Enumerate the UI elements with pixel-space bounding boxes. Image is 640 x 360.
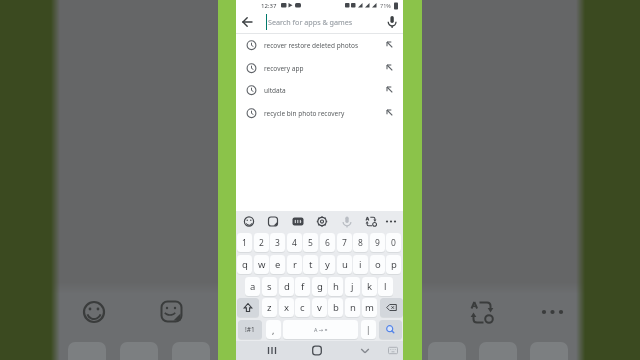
button[interactable]: 9 (370, 233, 385, 252)
button[interactable]: g (312, 277, 327, 296)
button[interactable] (379, 320, 402, 339)
button[interactable] (380, 298, 403, 317)
button[interactable]: 6 (320, 233, 335, 252)
button[interactable] (307, 341, 327, 360)
button[interactable] (340, 211, 354, 232)
button[interactable]: recovery app (236, 57, 403, 80)
button[interactable]: c (295, 298, 310, 317)
staticText: recover restore deleted photos (264, 41, 359, 50)
staticText: A → ¤ (314, 326, 328, 333)
button[interactable]: 7 (337, 233, 352, 252)
button[interactable] (364, 211, 378, 232)
button[interactable]: h (328, 277, 343, 296)
staticText: 3 (275, 237, 280, 249)
button[interactable]: q (237, 255, 252, 274)
button[interactable]: v (312, 298, 327, 317)
staticText: 1 (242, 237, 247, 249)
staticText: , (272, 324, 275, 336)
button[interactable] (266, 211, 280, 232)
button[interactable]: 8 (353, 233, 368, 252)
staticText: m (365, 301, 374, 314)
staticText: 4 (292, 237, 297, 249)
staticText: e (275, 258, 281, 271)
staticText: ultdata (264, 86, 286, 95)
button[interactable]: p (386, 255, 401, 274)
staticText: | (366, 324, 371, 335)
staticText: Search for apps & games (268, 17, 353, 27)
staticText: 2 (259, 237, 264, 249)
button[interactable]: | (361, 320, 376, 339)
staticText: i (359, 258, 362, 271)
button[interactable] (242, 211, 256, 232)
button[interactable]: u (337, 255, 352, 274)
button[interactable]: j (345, 277, 360, 296)
button[interactable] (381, 11, 403, 33)
staticText: v (317, 301, 322, 314)
button[interactable]: z (262, 298, 277, 317)
staticText: 6 (325, 237, 330, 249)
button[interactable]: 4 (287, 233, 302, 252)
button[interactable]: i (353, 255, 368, 274)
staticText: r (293, 258, 297, 271)
button[interactable]: n (345, 298, 360, 317)
button[interactable] (237, 298, 259, 317)
staticText: g (317, 280, 323, 293)
button[interactable]: 5 (303, 233, 318, 252)
button[interactable]: 2 (254, 233, 269, 252)
staticText: 7 (342, 237, 347, 249)
button[interactable]: , (266, 320, 281, 339)
button[interactable] (236, 11, 260, 33)
button[interactable]: f (295, 277, 310, 296)
button[interactable]: k (362, 277, 377, 296)
button[interactable]: !#1 (238, 320, 262, 339)
button[interactable]: a (245, 277, 260, 296)
staticText: 9 (375, 237, 380, 249)
button[interactable]: 3 (270, 233, 285, 252)
button[interactable] (262, 341, 282, 360)
staticText: 12:37 (261, 2, 277, 10)
staticText: !#1 (245, 325, 255, 334)
staticText: f (301, 280, 305, 293)
button[interactable]: b (328, 298, 343, 317)
staticText: t (309, 258, 313, 271)
staticText: x (284, 301, 290, 314)
button[interactable]: y (320, 255, 335, 274)
button[interactable]: m (362, 298, 377, 317)
button[interactable] (384, 211, 398, 232)
staticText: recovery app (264, 64, 304, 73)
button[interactable]: s (262, 277, 277, 296)
button[interactable] (291, 211, 305, 232)
staticText: d (284, 280, 290, 293)
button[interactable]: recover restore deleted photos (236, 34, 403, 57)
button[interactable]: recycle bin photo recovery (236, 102, 403, 125)
staticText: k (367, 280, 373, 293)
button[interactable]: x (279, 298, 294, 317)
button[interactable]: 0 (386, 233, 401, 252)
staticText: q (242, 258, 248, 271)
staticText: a (250, 280, 256, 293)
button[interactable]: ultdata (236, 79, 403, 102)
staticText: z (267, 301, 272, 314)
staticText: y (325, 258, 330, 271)
button[interactable]: l (378, 277, 393, 296)
button[interactable]: w (254, 255, 269, 274)
button[interactable] (355, 341, 375, 360)
button[interactable]: e (270, 255, 285, 274)
button[interactable]: r (287, 255, 302, 274)
staticText: 8 (358, 237, 363, 249)
staticText: j (351, 280, 354, 293)
button[interactable] (315, 211, 329, 232)
staticText: l (384, 280, 387, 293)
button[interactable]: 1 (237, 233, 252, 252)
button[interactable]: t (303, 255, 318, 274)
button[interactable]: d (279, 277, 294, 296)
staticText: h (333, 280, 339, 293)
button[interactable]: Search for apps & games (264, 11, 378, 33)
staticText: p (391, 258, 397, 271)
staticText: s (267, 280, 272, 293)
button[interactable]: A → ¤ (283, 320, 358, 339)
staticText: o (375, 258, 381, 271)
staticText: c (300, 301, 305, 314)
button[interactable]: o (370, 255, 385, 274)
button[interactable] (383, 341, 403, 360)
